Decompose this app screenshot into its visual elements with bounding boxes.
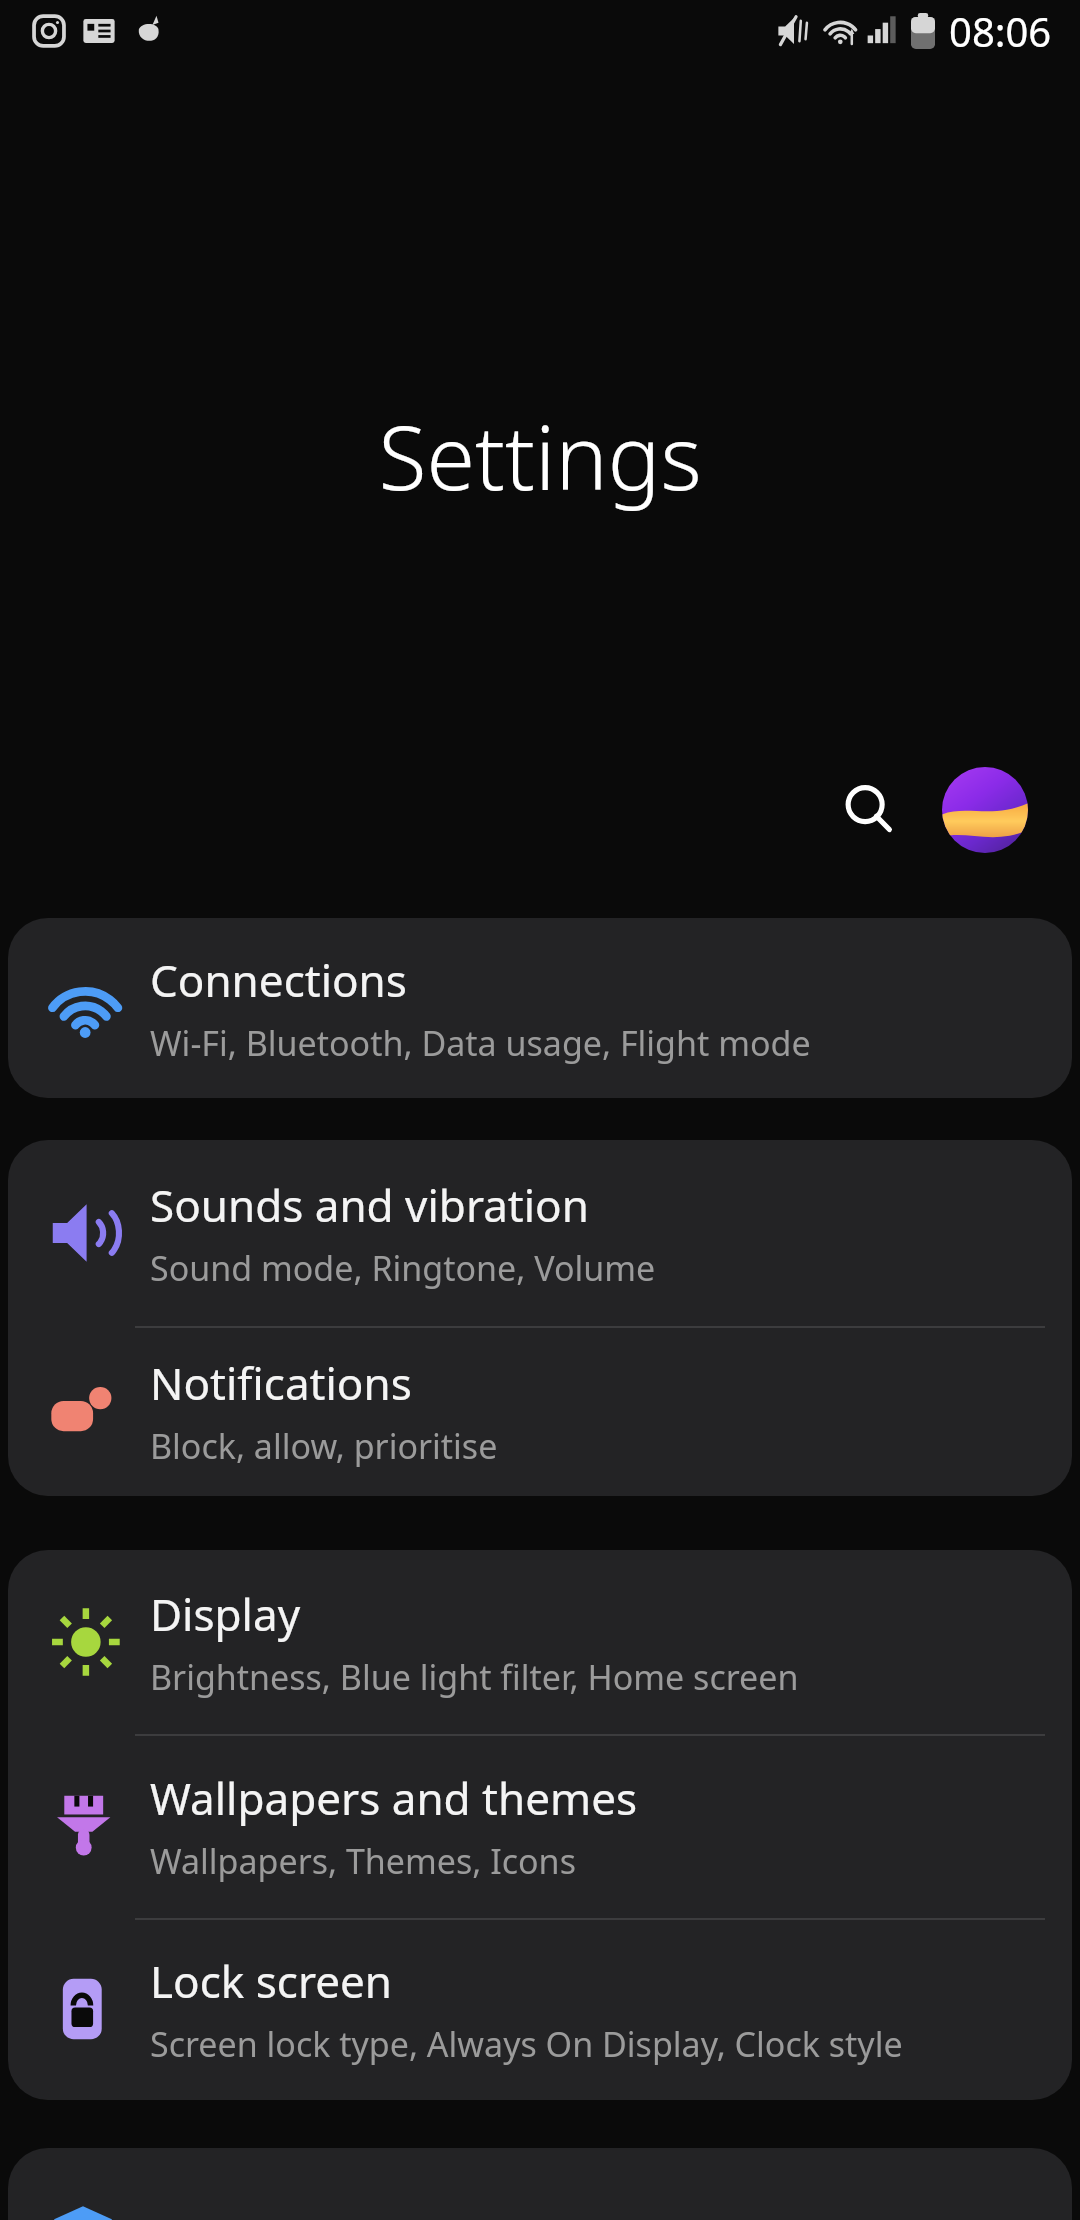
- staticText: Sounds and vibration: [150, 1175, 589, 1235]
- button[interactable]: Wallpapers and themes: [8, 1734, 1072, 1918]
- staticText: Display: [150, 1584, 301, 1644]
- staticText: Wallpapers, Themes, Icons: [150, 1838, 576, 1884]
- staticText: Brightness, Blue light filter, Home scre…: [150, 1654, 799, 1700]
- staticText: Lock screen: [150, 1951, 393, 2011]
- staticText: 08:06: [949, 4, 1052, 58]
- staticText: Block, allow, prioritise: [150, 1423, 498, 1469]
- button[interactable]: Biometrics and security: [8, 2148, 1072, 2220]
- staticText: Sound mode, Ringtone, Volume: [150, 1245, 656, 1291]
- button[interactable]: Sounds and vibration: [8, 1140, 1072, 1326]
- button[interactable]: Connections: [8, 918, 1072, 1098]
- staticText: Settings: [0, 396, 1080, 516]
- staticText: Connections: [150, 950, 407, 1010]
- button[interactable]: Lock screen: [8, 1918, 1072, 2100]
- staticText: Wi-Fi, Bluetooth, Data usage, Flight mod…: [150, 1020, 811, 1066]
- button[interactable]: Display: [8, 1550, 1072, 1734]
- staticText: Wallpapers and themes: [150, 1768, 638, 1828]
- staticText: Notifications: [150, 1353, 412, 1413]
- button[interactable]: Account: [941, 766, 1029, 854]
- button[interactable]: Notifications: [8, 1326, 1072, 1496]
- staticText: Screen lock type, Always On Display, Clo…: [150, 2021, 903, 2067]
- button[interactable]: Search: [826, 766, 914, 854]
